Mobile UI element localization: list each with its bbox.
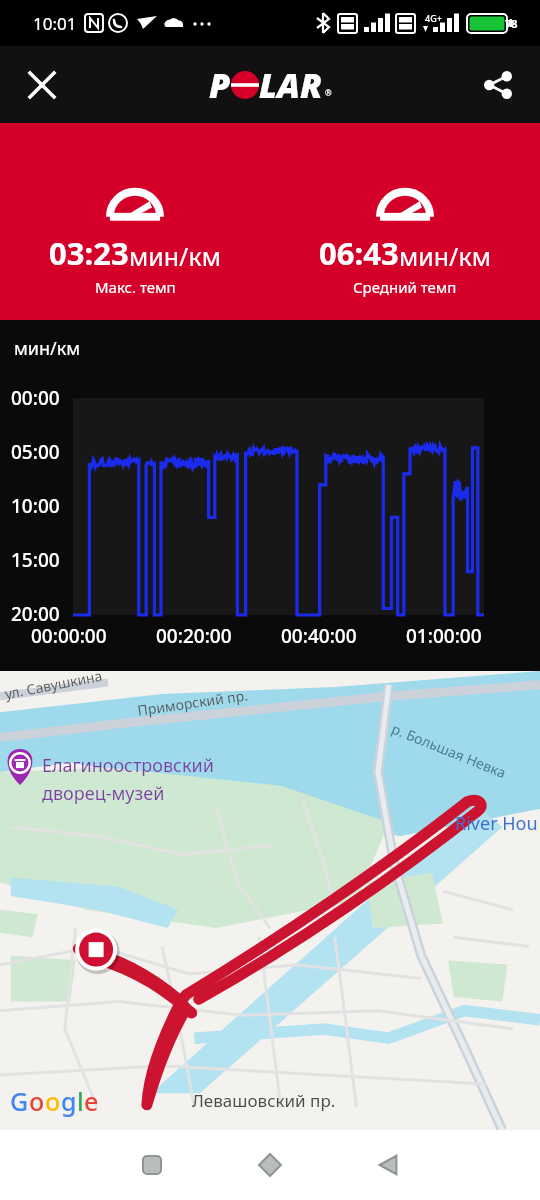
staticText: l	[77, 1084, 84, 1118]
staticText: P	[209, 62, 231, 108]
staticText: LAR	[259, 62, 323, 108]
button[interactable]: Back	[362, 1139, 414, 1191]
staticText: 78	[505, 16, 518, 31]
staticText: 00:00	[11, 385, 60, 411]
staticText: Левашовский пр.	[192, 1089, 336, 1112]
staticText: G	[10, 1084, 29, 1118]
staticText: Елагиноостровский	[42, 753, 214, 778]
staticText: o	[45, 1084, 61, 1118]
staticText: дворец-музей	[42, 781, 165, 806]
button[interactable]: ул. Савушкина	[0, 671, 540, 1130]
staticText: 20:00	[11, 601, 60, 627]
staticText: 10:00	[11, 493, 60, 519]
staticText: o	[29, 1084, 45, 1118]
staticText: 10:01	[33, 12, 77, 35]
staticText: 03:23	[49, 232, 129, 274]
staticText: 4G+	[425, 12, 442, 24]
staticText: 00:20:00	[156, 623, 232, 649]
staticText: 01:00:00	[406, 623, 482, 649]
button[interactable]: Home	[244, 1139, 296, 1191]
button[interactable]: 03:23	[0, 184, 270, 297]
staticText: 00:00:00	[31, 623, 107, 649]
staticText: g	[61, 1084, 77, 1118]
staticText: ул. Савушкина	[3, 666, 104, 703]
staticText: Макс. темп	[95, 277, 176, 297]
staticText: мин/км	[129, 239, 221, 273]
staticText: 05:00	[11, 439, 60, 465]
button[interactable]: Close	[14, 57, 70, 113]
staticText: мин/км	[399, 239, 491, 273]
button[interactable]: Recent apps	[126, 1139, 178, 1191]
staticText: Средний темп	[353, 277, 457, 297]
staticText: мин/км	[14, 336, 81, 361]
staticText: 06:43	[319, 232, 399, 274]
button[interactable]: Share	[470, 57, 526, 113]
staticText: e	[84, 1084, 99, 1118]
staticText: ®	[325, 87, 332, 98]
staticText: Приморский пр.	[136, 685, 250, 720]
button[interactable]: 06:43	[270, 184, 540, 297]
staticText: 00:40:00	[281, 623, 357, 649]
staticText: 15:00	[11, 547, 60, 573]
staticText: River Hou	[455, 811, 538, 836]
staticText: р. Большая Невка	[389, 719, 509, 782]
